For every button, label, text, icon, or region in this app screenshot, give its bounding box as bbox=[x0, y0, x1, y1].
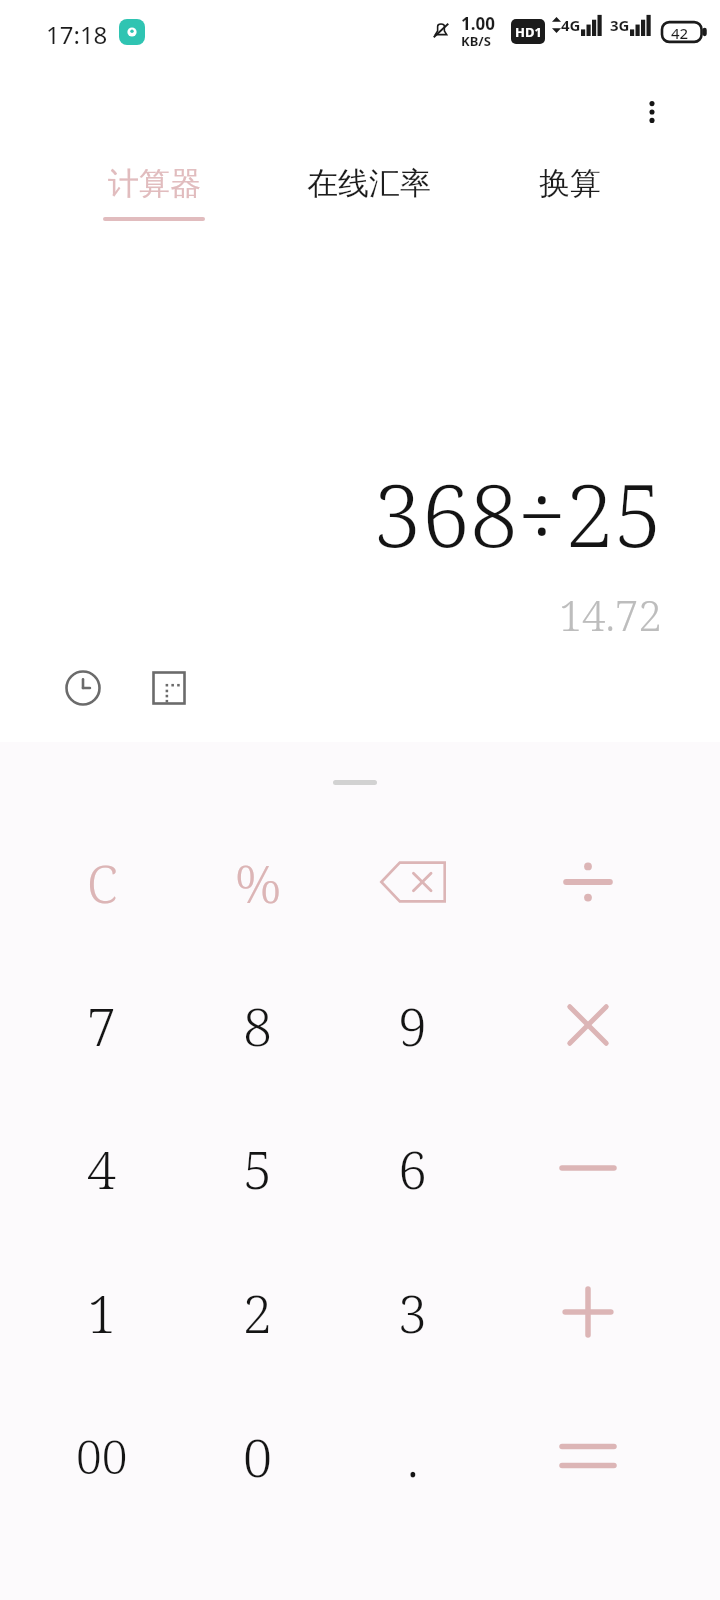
button[interactable] bbox=[510, 1106, 666, 1230]
staticText: 4 bbox=[87, 1133, 117, 1204]
staticText: KB/S bbox=[461, 32, 491, 50]
button[interactable]: . bbox=[335, 1394, 491, 1518]
button[interactable]: 3 bbox=[335, 1250, 491, 1374]
button[interactable]: 换算 bbox=[512, 164, 628, 250]
staticText: % bbox=[235, 847, 282, 918]
staticText: 4G bbox=[561, 15, 581, 35]
staticText: 17:18 bbox=[46, 18, 108, 51]
button[interactable]: 1 bbox=[24, 1250, 180, 1374]
button[interactable]: C bbox=[24, 820, 180, 944]
staticText: 368÷25 bbox=[373, 455, 662, 572]
staticText: 2 bbox=[243, 1277, 273, 1348]
button[interactable] bbox=[510, 963, 666, 1087]
button[interactable]: 4 bbox=[24, 1106, 180, 1230]
button[interactable]: 7 bbox=[24, 963, 180, 1087]
button[interactable]: History bbox=[52, 657, 114, 719]
button[interactable]: 8 bbox=[180, 963, 336, 1087]
staticText: C bbox=[87, 847, 118, 918]
staticText: 1.00 bbox=[461, 12, 495, 35]
button[interactable]: More options bbox=[616, 76, 688, 148]
button[interactable] bbox=[510, 1394, 666, 1518]
staticText: 0 bbox=[243, 1421, 273, 1492]
staticText: 8 bbox=[243, 990, 273, 1061]
button[interactable]: Scientific keypad bbox=[138, 657, 200, 719]
staticText: 3G bbox=[610, 15, 630, 35]
button[interactable] bbox=[510, 1250, 666, 1374]
staticText: 9 bbox=[398, 990, 428, 1061]
staticText: HD1 bbox=[515, 23, 542, 41]
staticText: 换算 bbox=[539, 164, 601, 203]
button[interactable]: 9 bbox=[335, 963, 491, 1087]
button[interactable]: % bbox=[180, 820, 336, 944]
staticText: 3 bbox=[398, 1277, 428, 1348]
staticText: 42 bbox=[671, 23, 689, 43]
button[interactable]: 00 bbox=[24, 1394, 180, 1518]
staticText: 在线汇率 bbox=[307, 164, 431, 203]
staticText: 00 bbox=[76, 1425, 128, 1488]
staticText: 7 bbox=[87, 990, 117, 1061]
button[interactable]: 计算器 bbox=[77, 164, 231, 250]
button[interactable]: 0 bbox=[180, 1394, 336, 1518]
button[interactable]: 2 bbox=[180, 1250, 336, 1374]
button[interactable]: Backspace bbox=[335, 820, 491, 944]
button[interactable] bbox=[510, 820, 666, 944]
staticText: 14.72 bbox=[558, 586, 662, 643]
button[interactable]: 6 bbox=[335, 1106, 491, 1230]
button[interactable]: 在线汇率 bbox=[282, 164, 456, 250]
staticText: 6 bbox=[398, 1133, 428, 1204]
staticText: 计算器 bbox=[108, 164, 201, 203]
staticText: 1 bbox=[87, 1277, 117, 1348]
button[interactable]: 5 bbox=[180, 1106, 336, 1230]
staticText: . bbox=[407, 1421, 419, 1492]
staticText: 5 bbox=[243, 1133, 273, 1204]
